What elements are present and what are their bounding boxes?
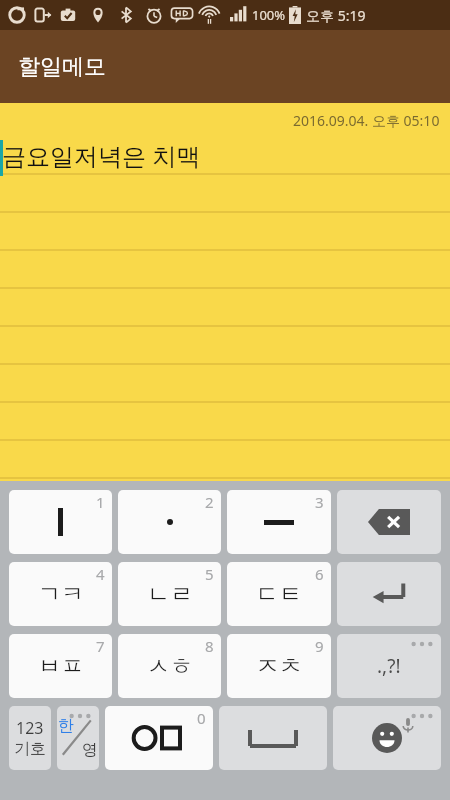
staticText: 9 [315, 636, 324, 656]
button[interactable]: Space [219, 706, 327, 770]
staticText: ㄱㅋ [38, 580, 84, 609]
button[interactable]: ㄷㅌ [227, 562, 331, 626]
button[interactable]: Emoji [333, 706, 441, 770]
button[interactable]: Enter [337, 562, 441, 626]
button[interactable]: ㄱㅋ [9, 562, 112, 626]
staticText: 7 [96, 636, 105, 656]
staticText: ㄴㄹ [147, 580, 193, 609]
button[interactable]: 3 [227, 490, 331, 554]
button[interactable]: 2 [118, 490, 221, 554]
button[interactable]: ㅂㅍ [9, 634, 112, 698]
button[interactable]: ㅅㅎ [118, 634, 221, 698]
staticText: 100% [252, 6, 286, 24]
staticText: 1 [96, 492, 105, 512]
staticText: ㅅㅎ [147, 652, 193, 681]
staticText: 4 [96, 564, 105, 584]
button[interactable]: Backspace [337, 490, 441, 554]
staticText: 2016.09.04. 오후 05:10 [293, 111, 440, 130]
staticText: 6 [315, 564, 324, 584]
staticText: 123 [16, 717, 44, 739]
button[interactable]: 1 [9, 490, 112, 554]
button[interactable]: 0 [105, 706, 213, 770]
staticText: 기호 [14, 739, 46, 759]
staticText: .,?! [377, 653, 401, 679]
staticText: 금요일저녁은 치맥 [2, 139, 201, 172]
button[interactable]: ㅈㅊ [227, 634, 331, 698]
staticText: ㅈㅊ [256, 652, 302, 681]
staticText: 2 [205, 492, 214, 512]
staticText: 5 [205, 564, 214, 584]
staticText: 할일메모 [18, 53, 106, 81]
staticText: 0 [197, 708, 206, 728]
button[interactable]: Korean English toggle [57, 706, 99, 770]
staticText: ㄷㅌ [256, 580, 302, 609]
staticText: 영 [82, 740, 98, 760]
staticText: 8 [205, 636, 214, 656]
staticText: 한 [58, 716, 74, 736]
staticText: ㅂㅍ [38, 652, 84, 681]
button[interactable]: ㄴㄹ [118, 562, 221, 626]
button[interactable]: 123 [9, 706, 51, 770]
staticText: 오후 5:19 [306, 6, 366, 25]
button[interactable]: .,?! [337, 634, 441, 698]
staticText: 3 [315, 492, 324, 512]
